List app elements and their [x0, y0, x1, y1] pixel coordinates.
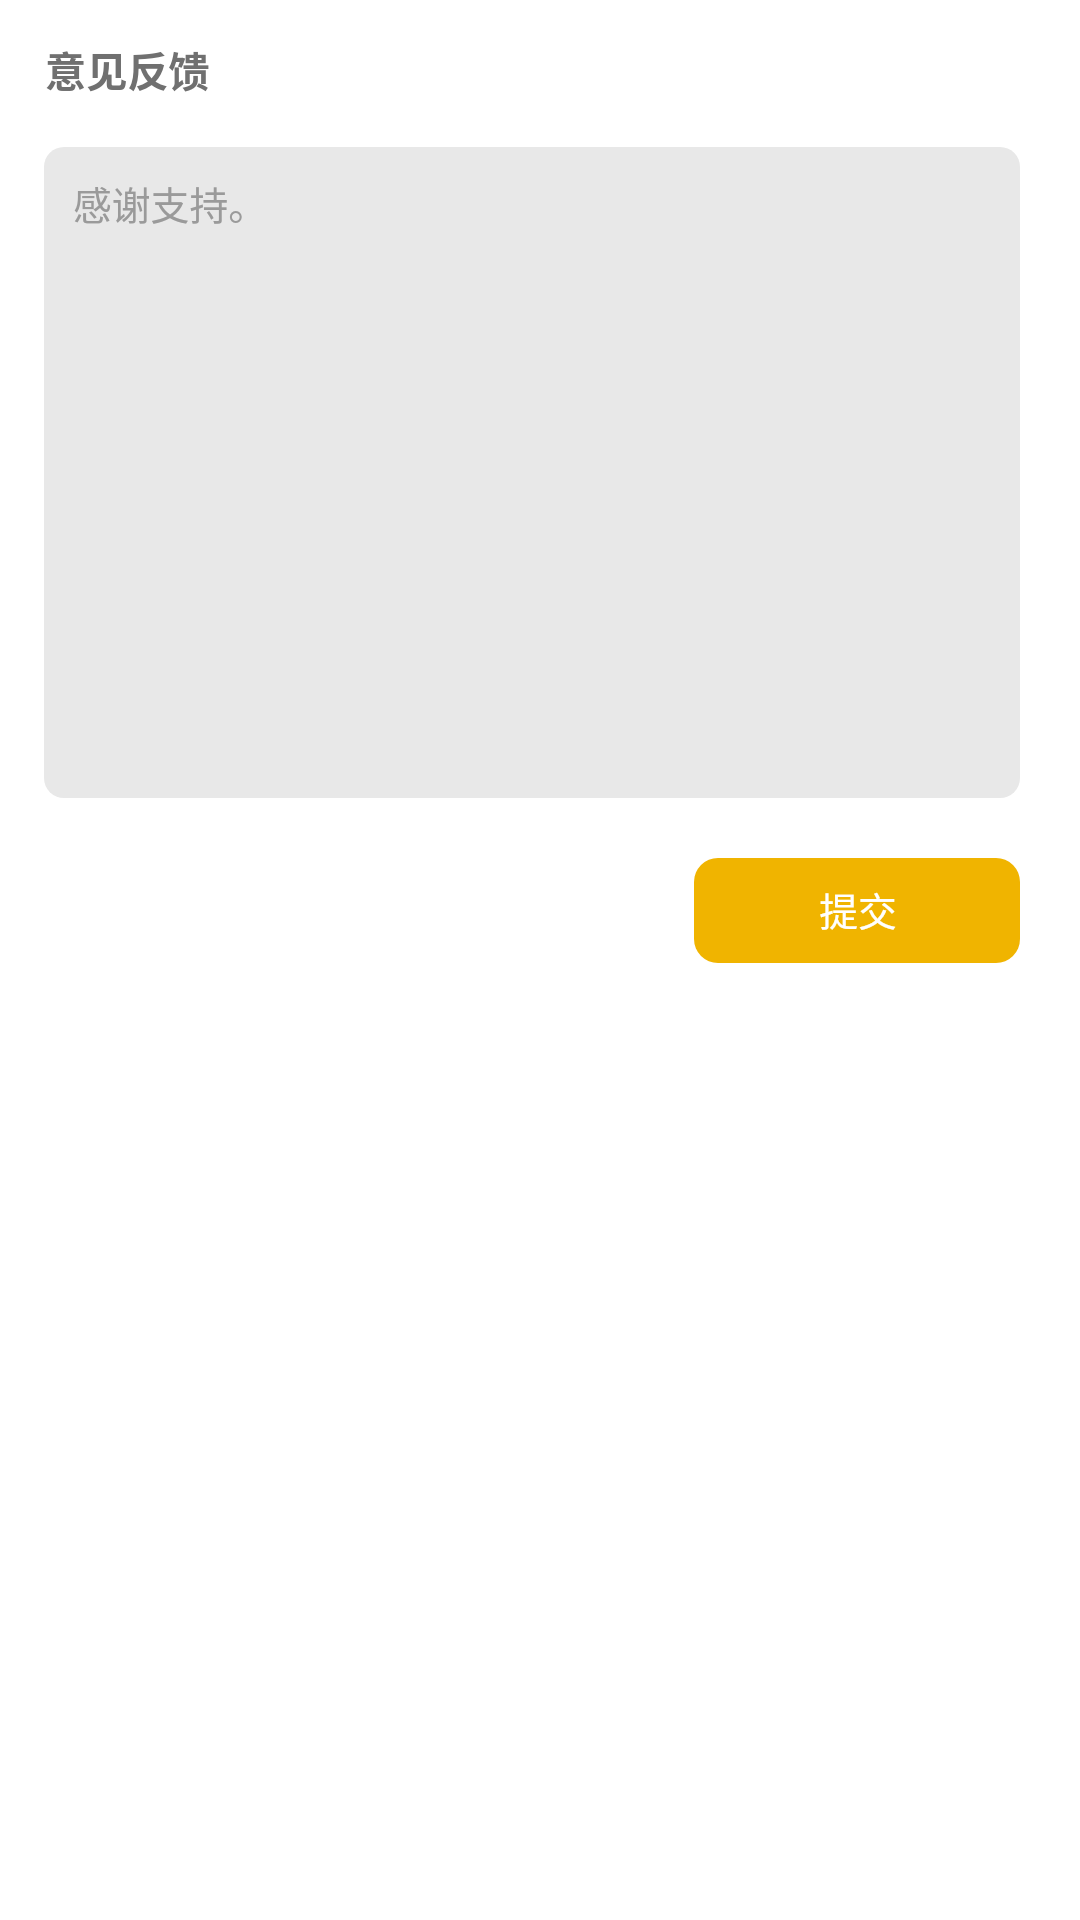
staticText: 感谢支持。 [73, 175, 267, 231]
staticText: 提交 [819, 881, 897, 937]
button[interactable]: 提交 [694, 858, 1020, 963]
button[interactable]: 意见反馈输入框 [44, 147, 1020, 798]
staticText: 意见反馈 [45, 39, 210, 99]
